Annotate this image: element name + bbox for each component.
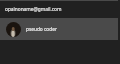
button[interactable]: opainoname@gmail.com	[0, 1, 120, 18]
button[interactable]: pseudo coder	[0, 18, 118, 40]
staticText: pseudo coder	[26, 26, 57, 33]
staticText: opainoname@gmail.com	[5, 6, 62, 13]
